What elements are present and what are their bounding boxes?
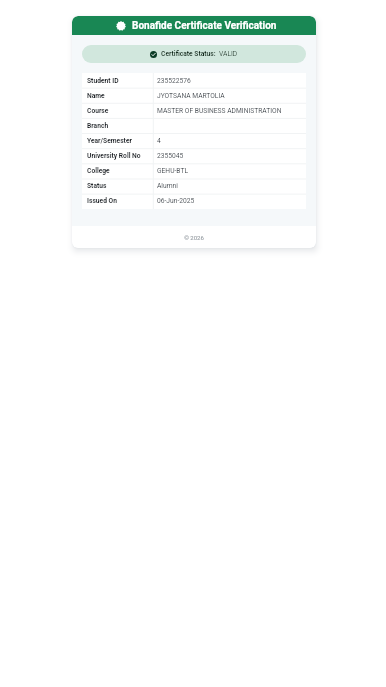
button[interactable]: Certificate Status: xyxy=(82,45,306,63)
staticText: 06-Jun-2025 xyxy=(157,197,195,205)
button[interactable]: Course xyxy=(82,103,306,118)
staticText: Student ID xyxy=(87,77,119,85)
staticText: Course xyxy=(87,107,109,115)
button[interactable]: Student ID xyxy=(82,73,306,88)
staticText: © 2026 xyxy=(184,234,204,241)
button[interactable]: Issued On xyxy=(82,193,306,208)
staticText: Alumni xyxy=(157,182,178,190)
staticText: 235522576 xyxy=(157,77,191,85)
staticText: Bonafide Certificate Verification xyxy=(132,20,277,32)
staticText: College xyxy=(87,167,110,175)
button[interactable]: Certificate seal xyxy=(72,16,316,35)
staticText: 2355045 xyxy=(157,152,184,160)
staticText: GEHU-BTL xyxy=(157,167,188,175)
staticText: Issued On xyxy=(87,197,117,205)
staticText: JYOTSANA MARTOLIA xyxy=(157,92,225,100)
staticText: University Roll No xyxy=(87,152,141,160)
button[interactable]: Status xyxy=(82,178,306,193)
other: Certificate seal xyxy=(116,21,126,31)
staticText: VALID xyxy=(219,50,238,58)
staticText: Year/Semester xyxy=(87,137,132,145)
button[interactable]: Year/Semester xyxy=(82,133,306,148)
staticText: Name xyxy=(87,92,105,100)
staticText: Certificate Status: xyxy=(161,50,216,58)
button[interactable]: Name xyxy=(82,88,306,103)
staticText: 4 xyxy=(157,137,161,145)
staticText: MASTER OF BUSINESS ADMINISTRATION xyxy=(157,107,282,115)
button[interactable]: College xyxy=(82,163,306,178)
button[interactable]: Branch xyxy=(82,118,306,133)
staticText: Status xyxy=(87,182,107,190)
button[interactable]: University Roll No xyxy=(82,148,306,163)
staticText: Branch xyxy=(87,122,109,130)
